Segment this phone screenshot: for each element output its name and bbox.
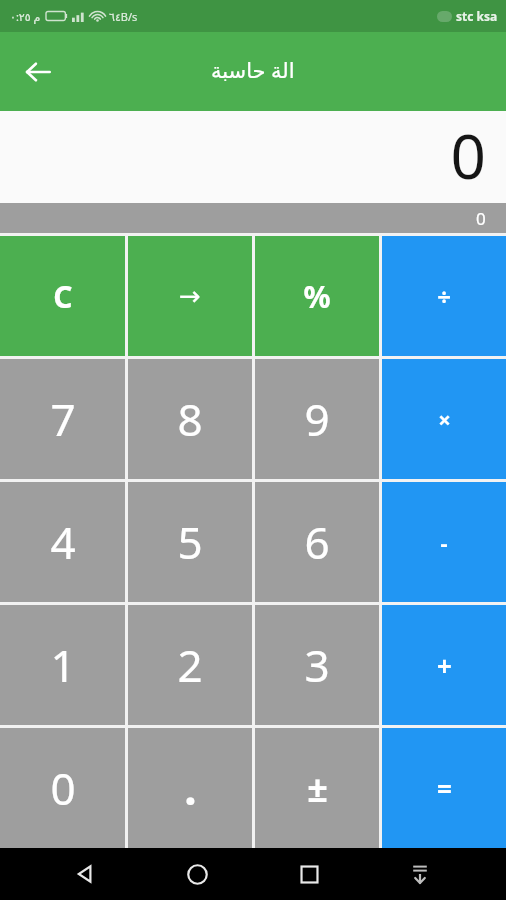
- button[interactable]: 0: [0, 728, 125, 848]
- button[interactable]: 5: [128, 482, 252, 602]
- staticText: 3: [304, 635, 330, 695]
- button[interactable]: Home: [171, 848, 223, 900]
- staticText: 6: [304, 512, 330, 572]
- staticText: 0: [50, 758, 76, 818]
- button[interactable]: +: [382, 605, 506, 725]
- staticText: %: [303, 276, 331, 317]
- button[interactable]: →: [128, 236, 252, 356]
- staticText: ٦٤B/s: [109, 9, 138, 24]
- button[interactable]: =: [382, 728, 506, 848]
- staticText: 5: [177, 512, 203, 572]
- staticText: =: [437, 771, 452, 806]
- staticText: 0: [476, 207, 486, 230]
- staticText: 7: [50, 389, 76, 449]
- staticText: →: [179, 281, 201, 311]
- button[interactable]: ×: [382, 359, 506, 479]
- staticText: .: [184, 758, 197, 818]
- staticText: 0: [450, 113, 486, 197]
- staticText: 8: [177, 389, 203, 449]
- staticText: 1: [50, 635, 76, 695]
- button[interactable]: 4: [0, 482, 125, 602]
- staticText: ±: [307, 764, 328, 813]
- button[interactable]: 8: [128, 359, 252, 479]
- button[interactable]: ÷: [382, 236, 506, 356]
- staticText: ÷: [437, 280, 451, 313]
- button[interactable]: -: [382, 482, 506, 602]
- staticText: -: [440, 527, 448, 557]
- button[interactable]: Back: [14, 48, 62, 96]
- button[interactable]: 6: [255, 482, 379, 602]
- staticText: 4: [50, 512, 76, 572]
- button[interactable]: Recents: [283, 848, 335, 900]
- staticText: ×: [438, 404, 451, 434]
- staticText: الة حاسبة: [211, 56, 295, 85]
- button[interactable]: Hide navigation bar: [394, 848, 446, 900]
- staticText: stc ksa: [456, 8, 498, 24]
- staticText: +: [437, 648, 452, 683]
- button[interactable]: C: [0, 236, 125, 356]
- button[interactable]: 2: [128, 605, 252, 725]
- button[interactable]: .: [128, 728, 252, 848]
- staticText: 9: [304, 389, 330, 449]
- button[interactable]: ±: [255, 728, 379, 848]
- staticText: 2: [177, 635, 203, 695]
- staticText: م ٠:٢٥: [10, 9, 41, 24]
- button[interactable]: Back: [60, 848, 112, 900]
- button[interactable]: %: [255, 236, 379, 356]
- button[interactable]: 1: [0, 605, 125, 725]
- button[interactable]: 3: [255, 605, 379, 725]
- button[interactable]: 7: [0, 359, 125, 479]
- staticText: C: [53, 276, 73, 317]
- button[interactable]: 9: [255, 359, 379, 479]
